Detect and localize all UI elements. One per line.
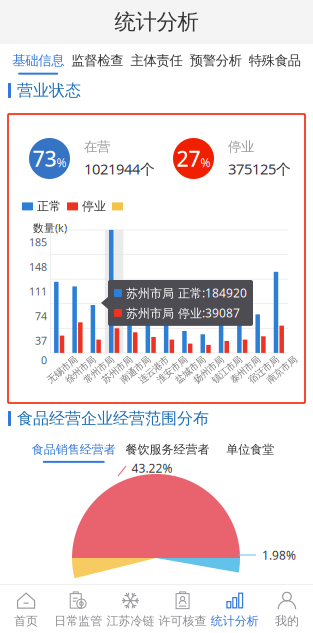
button[interactable]: 单位食堂: [219, 435, 281, 463]
button[interactable]: 主体责任: [130, 44, 182, 75]
staticText: 许可核查: [159, 614, 207, 628]
staticText: 主体责任: [130, 52, 182, 69]
staticText: 单位食堂: [226, 442, 274, 457]
staticText: 375125个: [228, 159, 291, 178]
staticText: 泰州市局: [227, 364, 263, 376]
staticText: 停业: [82, 199, 106, 214]
staticText: 1.98%: [262, 547, 296, 563]
button[interactable]: 特殊食品: [249, 44, 301, 75]
staticText: 111: [29, 284, 47, 298]
staticText: 食品经营企业经营范围分布: [17, 409, 209, 428]
staticText: 南通市局: [117, 364, 153, 376]
staticText: 预警分析: [190, 52, 242, 69]
button[interactable]: 统计分析: [209, 586, 261, 632]
button[interactable]: 江苏冷链: [104, 586, 156, 632]
staticText: 苏州市局: [99, 364, 135, 376]
staticText: 首页: [14, 614, 38, 628]
staticText: 185: [29, 235, 47, 249]
staticText: 74: [35, 309, 47, 323]
staticText: 在营: [84, 139, 110, 155]
staticText: 宿迁市局: [245, 364, 281, 376]
staticText: 统计分析: [211, 614, 259, 628]
staticText: 基础信息: [12, 52, 64, 69]
staticText: 常州市局: [81, 364, 117, 376]
staticText: 江苏冷链: [106, 614, 154, 628]
staticText: 我的: [275, 614, 299, 628]
staticText: 1021944个: [84, 159, 155, 178]
staticText: 扬州市局: [191, 364, 227, 376]
staticText: 餐饮服务经营者: [125, 442, 209, 457]
staticText: 148: [29, 260, 47, 274]
staticText: 37: [35, 333, 47, 348]
staticText: 无锡市局: [44, 364, 80, 376]
staticText: 特殊食品: [249, 52, 301, 69]
staticText: 73: [32, 144, 56, 173]
staticText: 正常: [37, 199, 61, 214]
staticText: 南京市局: [264, 364, 300, 376]
staticText: 苏州市局 停业:39087: [126, 305, 240, 321]
staticText: 食品销售经营者: [32, 442, 116, 457]
staticText: 镇江市局: [209, 364, 245, 376]
button[interactable]: 许可核查: [156, 586, 209, 632]
button[interactable]: 餐饮服务经营者: [125, 435, 209, 463]
staticText: %: [200, 155, 210, 171]
staticText: 数量(k): [33, 221, 67, 235]
button[interactable]: 预警分析: [190, 44, 242, 75]
staticText: 徐州市局: [62, 364, 98, 376]
button[interactable]: 监督检查: [71, 44, 123, 75]
staticText: 苏州市局 正常:184920: [126, 285, 247, 301]
button[interactable]: 我的: [261, 586, 313, 632]
staticText: 淮安市局: [154, 364, 190, 376]
button[interactable]: 首页: [0, 586, 52, 632]
staticText: 监督检查: [71, 52, 123, 69]
staticText: 0: [41, 353, 47, 367]
button[interactable]: 食品销售经营者: [32, 435, 116, 463]
button[interactable]: 日常监管: [52, 586, 104, 632]
staticText: 连云港市: [136, 364, 172, 376]
button[interactable]: 基础信息: [12, 44, 64, 75]
staticText: 统计分析: [114, 9, 198, 35]
staticText: 27: [176, 144, 200, 173]
staticText: 盐城市局: [172, 364, 208, 376]
staticText: %: [56, 155, 66, 171]
staticText: 日常监管: [54, 614, 102, 628]
staticText: 营业状态: [17, 81, 81, 100]
staticText: 停业: [228, 139, 254, 155]
staticText: 43.22%: [131, 460, 172, 476]
